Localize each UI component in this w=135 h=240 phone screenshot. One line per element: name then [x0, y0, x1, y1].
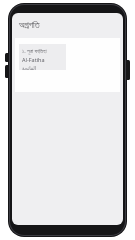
other: Volume up	[5, 53, 10, 62]
other: Volume down	[5, 65, 10, 78]
staticText: Al-Fatiha	[22, 56, 45, 63]
button[interactable]: ১. সূরা ফাতিহা	[15, 38, 120, 92]
staticText: অগ্রগতি	[19, 21, 40, 30]
button[interactable]: ১. সূরা ফাতিহা	[19, 44, 66, 70]
staticText: ১. সূরা ফাতিহা	[22, 47, 47, 54]
other: Power	[125, 60, 130, 80]
staticText: الفاتحة	[22, 65, 37, 71]
